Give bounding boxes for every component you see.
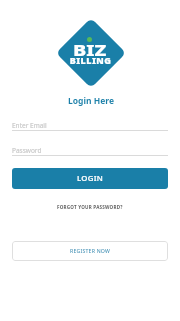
button[interactable]: REGISTER NOW: [12, 241, 168, 261]
button[interactable]: FORGOT YOUR PASSWORD?: [53, 202, 127, 212]
staticText: Password: [12, 146, 42, 155]
button[interactable]: LOGIN: [12, 168, 168, 189]
staticText: LOGIN: [77, 173, 104, 184]
staticText: BIZ: [73, 40, 107, 61]
staticText: BILLING: [70, 55, 112, 66]
staticText: Enter Email: [12, 121, 47, 130]
button[interactable]: Enter Email: [12, 121, 168, 130]
button[interactable]: Password: [12, 146, 168, 155]
staticText: REGISTER NOW: [70, 247, 111, 254]
other: Biz Billing logo: [58, 20, 124, 85]
staticText: Login Here: [68, 95, 114, 107]
